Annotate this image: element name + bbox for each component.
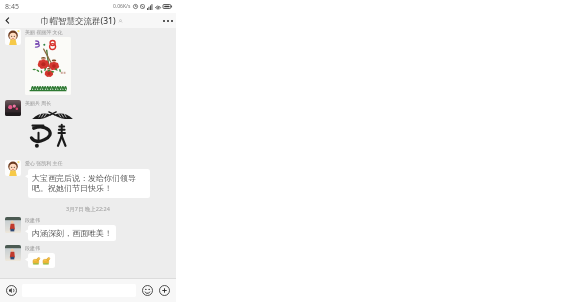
staticText: 3月7日 晚上22:24 (0, 205, 176, 213)
button[interactable]: Calligraphy image (25, 108, 79, 152)
button[interactable]: Voice message (5, 284, 18, 297)
button[interactable]: Thumbs up sticker message (28, 253, 55, 268)
staticText: 内涵深刻，画面唯美！ (32, 228, 112, 238)
staticText: 0.06K/s (113, 3, 131, 10)
staticText: 美丽兵 周长 (25, 100, 52, 107)
button[interactable]: More options (160, 13, 176, 28)
staticText: 大宝画完后说：发给你们领导吧。祝她们节日快乐！ (32, 173, 146, 194)
staticText: 巾帽智慧交流群(31) (41, 15, 116, 27)
button[interactable]: 内涵深刻，画面唯美！ (28, 225, 116, 241)
button[interactable]: More functions (158, 284, 171, 297)
button[interactable]: Back (0, 13, 15, 28)
button[interactable]: 大宝画完后说：发给你们领导吧。祝她们节日快乐！ (28, 169, 150, 198)
button[interactable]: Emoji (141, 284, 154, 297)
staticText: 8:45 (5, 2, 19, 12)
staticText: 美丽 崔丽萍 文化 (25, 29, 63, 36)
staticText: 段建伟 (25, 245, 40, 251)
staticText: 爱心 张凯利 主任 (25, 160, 63, 167)
staticText: 段建伟 (25, 217, 40, 223)
button[interactable]: Photo message (25, 37, 71, 95)
